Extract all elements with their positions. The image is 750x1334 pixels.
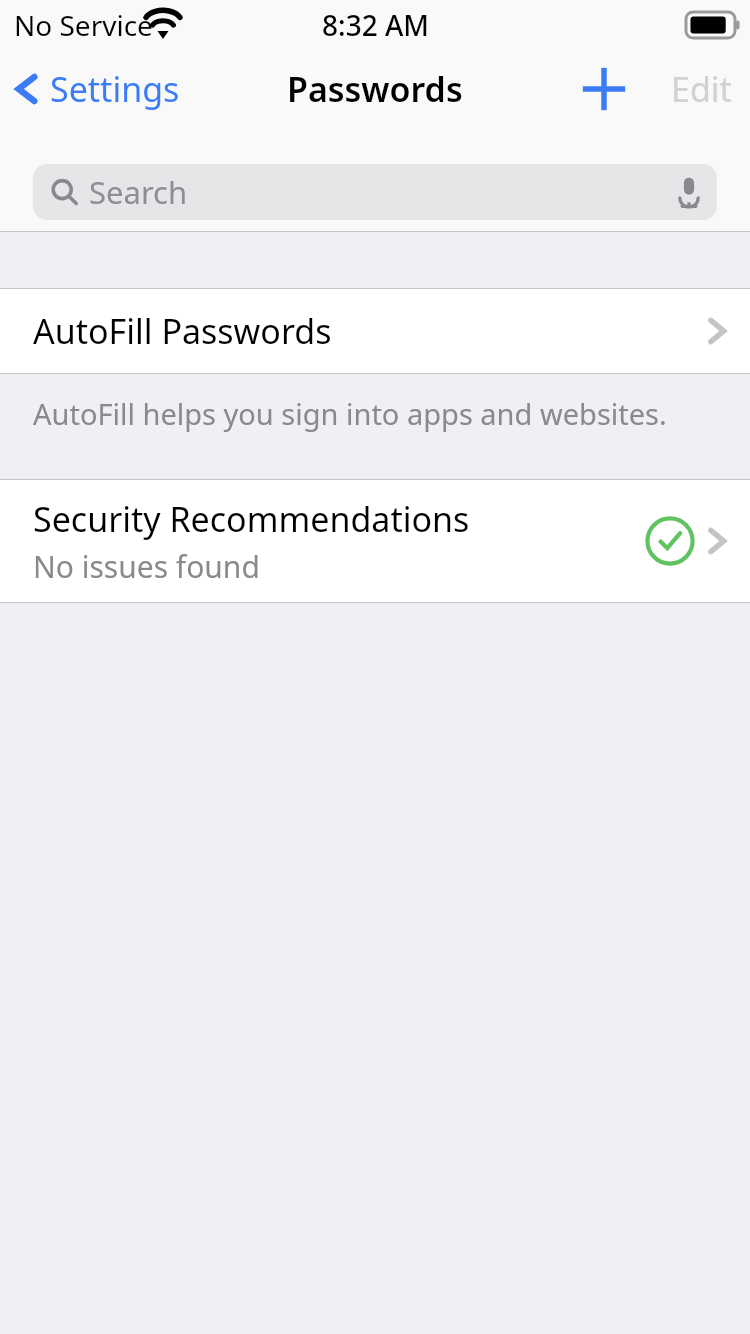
staticText: 8:32 AM — [322, 6, 429, 44]
button[interactable]: Dictate — [661, 164, 717, 220]
button[interactable]: AutoFill Passwords — [0, 289, 750, 373]
staticText: Security Recommendations — [33, 496, 470, 542]
staticText: No issues found — [33, 546, 260, 587]
staticText: Passwords — [287, 66, 463, 112]
staticText: AutoFill Passwords — [33, 308, 332, 354]
button[interactable]: Edit — [655, 56, 750, 122]
button[interactable]: Security Recommendations — [0, 480, 750, 602]
staticText: No Service — [14, 6, 153, 44]
button[interactable]: Settings — [0, 58, 192, 120]
staticText: AutoFill helps you sign into apps and we… — [33, 394, 667, 433]
button[interactable]: Add password — [576, 61, 632, 117]
staticText: Edit — [671, 66, 732, 112]
staticText: Search — [89, 171, 661, 213]
button[interactable]: Search — [33, 164, 717, 220]
staticText: Settings — [50, 66, 180, 112]
